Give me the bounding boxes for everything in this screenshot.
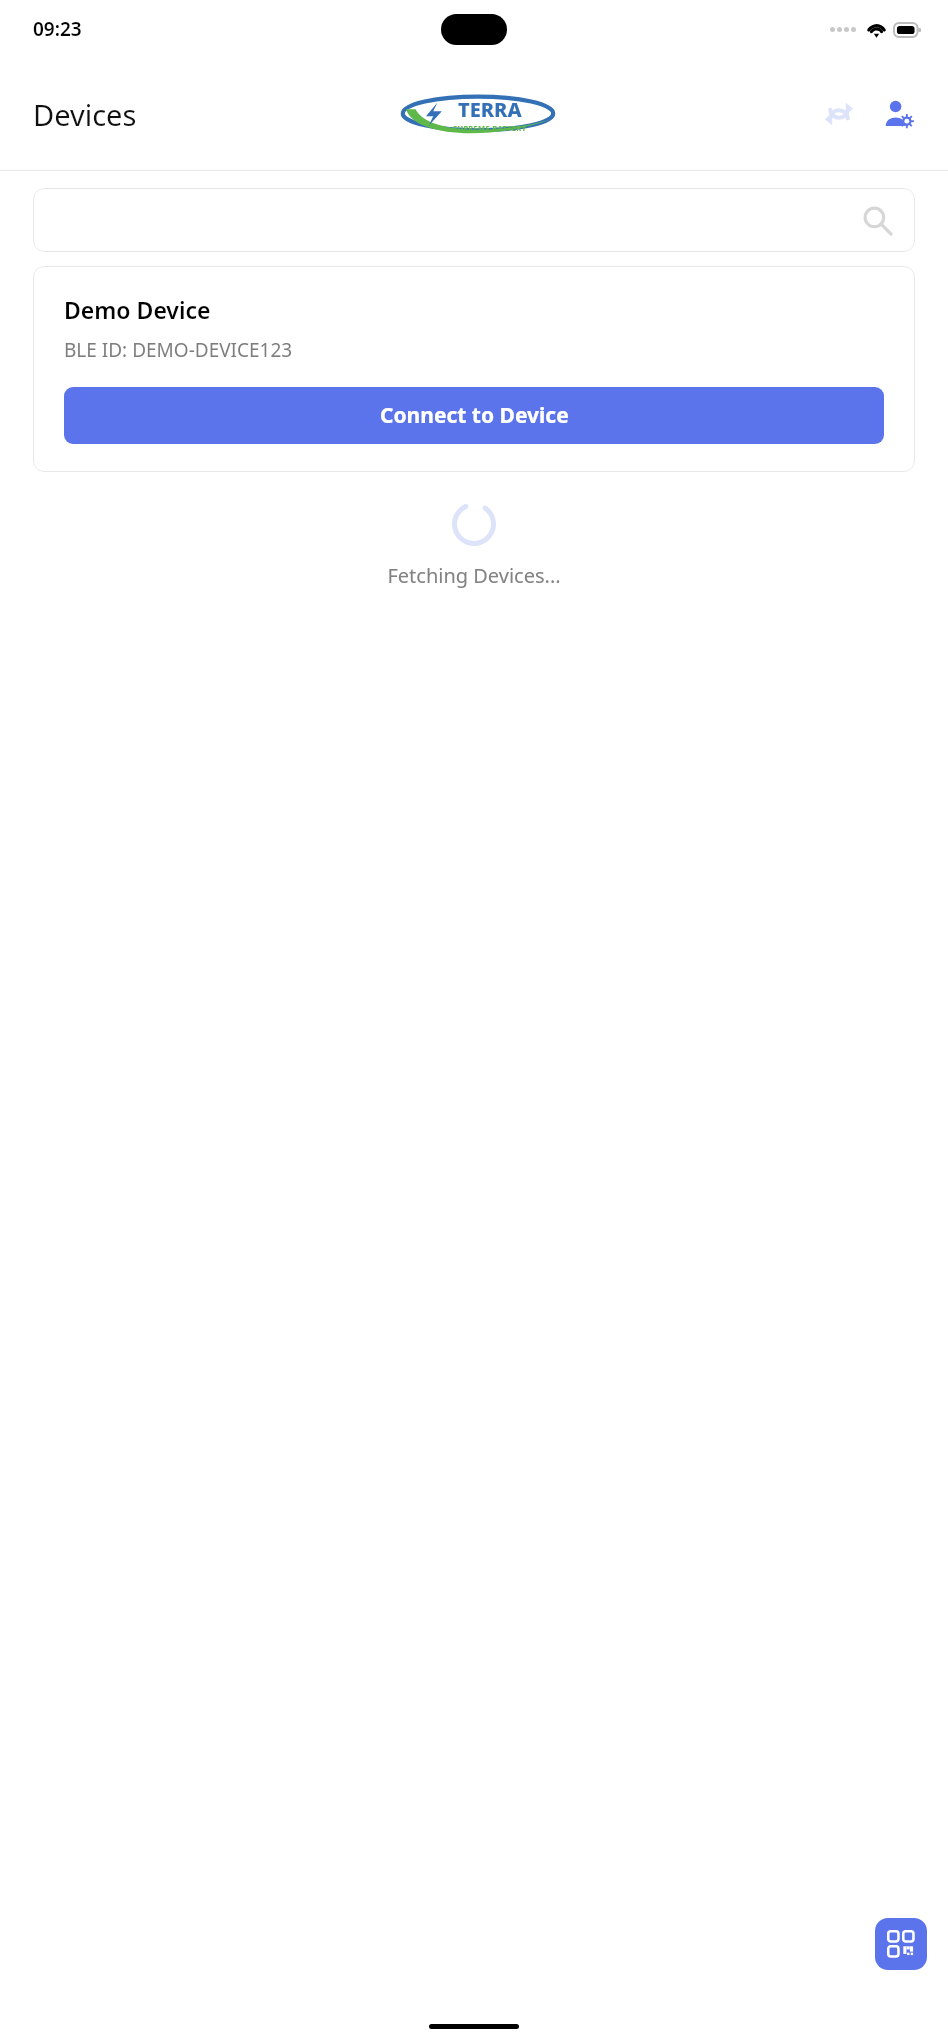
- button[interactable]: Scan QR code: [875, 1918, 927, 1970]
- button[interactable]: [33, 188, 915, 252]
- staticText: Fetching Devices...: [387, 562, 561, 589]
- staticText: SUPREME BATTERY: [453, 123, 527, 133]
- button[interactable]: Demo Device: [33, 266, 915, 472]
- button[interactable]: Refresh devices: [816, 91, 862, 137]
- staticText: BLE ID: DEMO-DEVICE123: [64, 337, 293, 363]
- staticText: Devices: [33, 95, 137, 134]
- staticText: 09:23: [33, 16, 82, 42]
- staticText: TERRA: [458, 96, 522, 123]
- button[interactable]: Connect to Device: [64, 387, 884, 444]
- button[interactable]: Account settings: [876, 91, 922, 137]
- staticText: Demo Device: [64, 294, 211, 325]
- staticText: Connect to Device: [380, 401, 569, 430]
